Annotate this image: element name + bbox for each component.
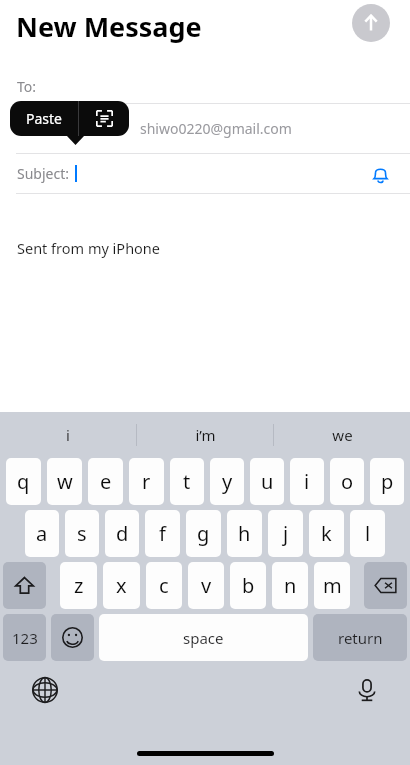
button[interactable]: h — [227, 510, 262, 557]
staticText: z — [74, 572, 84, 599]
button[interactable]: return — [313, 614, 407, 661]
button[interactable]: space — [99, 614, 308, 661]
button[interactable]: g — [186, 510, 221, 557]
button[interactable]: i — [0, 412, 136, 458]
button[interactable]: Emoji — [51, 614, 94, 661]
staticText: d — [116, 520, 129, 547]
staticText: b — [242, 572, 255, 599]
staticText: e — [100, 468, 112, 495]
staticText: we — [332, 425, 353, 445]
button[interactable]: r — [129, 458, 164, 505]
staticText: u — [261, 468, 274, 495]
staticText: c — [159, 572, 169, 599]
button[interactable]: k — [309, 510, 344, 557]
button[interactable]: Shift — [3, 562, 46, 609]
button[interactable]: Dictate — [350, 673, 384, 707]
staticText: x — [116, 572, 127, 599]
button[interactable]: j — [268, 510, 303, 557]
staticText: i’m — [195, 425, 216, 445]
button[interactable]: c — [146, 562, 182, 609]
staticText: n — [284, 572, 297, 599]
button[interactable]: Paste — [10, 101, 78, 136]
button[interactable]: 123 — [3, 614, 46, 661]
staticText: space — [183, 628, 224, 648]
button[interactable]: y — [210, 458, 244, 505]
button[interactable]: a — [25, 510, 59, 557]
staticText: h — [238, 520, 251, 547]
staticText: return — [338, 628, 383, 648]
staticText: g — [197, 520, 210, 547]
staticText: p — [381, 468, 394, 495]
button[interactable]: x — [103, 562, 140, 609]
button[interactable]: f — [145, 510, 180, 557]
button[interactable]: l — [350, 510, 385, 557]
button[interactable]: Backspace — [364, 562, 407, 609]
staticText: o — [341, 468, 354, 495]
button[interactable]: Send — [352, 4, 390, 42]
staticText: j — [283, 520, 289, 547]
button[interactable]: d — [105, 510, 139, 557]
staticText: q — [17, 468, 30, 495]
staticText: Sent from my iPhone — [17, 238, 160, 258]
staticText: f — [159, 520, 166, 547]
button[interactable]: v — [188, 562, 224, 609]
button[interactable]: Change keyboard — [28, 673, 62, 707]
staticText: 123 — [12, 628, 38, 648]
staticText: l — [365, 520, 371, 547]
button[interactable]: z — [60, 562, 97, 609]
button[interactable]: m — [314, 562, 350, 609]
staticText: t — [183, 468, 191, 495]
staticText: y — [222, 468, 233, 495]
button[interactable]: o — [330, 458, 364, 505]
button[interactable]: p — [370, 458, 404, 505]
staticText: m — [323, 572, 342, 599]
staticText: Subject: — [17, 164, 69, 183]
staticText: k — [321, 520, 332, 547]
staticText: Paste — [26, 109, 62, 128]
button[interactable]: Notify me — [367, 161, 393, 187]
staticText: i — [66, 425, 70, 445]
staticText: i — [304, 468, 310, 495]
button[interactable]: q — [6, 458, 41, 505]
staticText: a — [36, 520, 48, 547]
button[interactable]: e — [88, 458, 123, 505]
button[interactable]: w — [47, 458, 82, 505]
button[interactable]: i’m — [137, 412, 273, 458]
staticText: shiwo0220@gmail.com — [140, 119, 292, 138]
button[interactable]: Scan text — [79, 101, 129, 136]
button[interactable]: b — [230, 562, 266, 609]
staticText: s — [77, 520, 87, 547]
button[interactable]: i — [290, 458, 324, 505]
staticText: r — [142, 468, 151, 495]
staticText: To: — [17, 77, 37, 96]
button[interactable]: t — [170, 458, 204, 505]
button[interactable]: u — [250, 458, 284, 505]
staticText: w — [57, 468, 73, 495]
staticText: New Message — [16, 8, 202, 45]
button[interactable]: s — [65, 510, 99, 557]
button[interactable]: we — [274, 412, 410, 458]
button[interactable]: n — [272, 562, 308, 609]
staticText: v — [201, 572, 212, 599]
